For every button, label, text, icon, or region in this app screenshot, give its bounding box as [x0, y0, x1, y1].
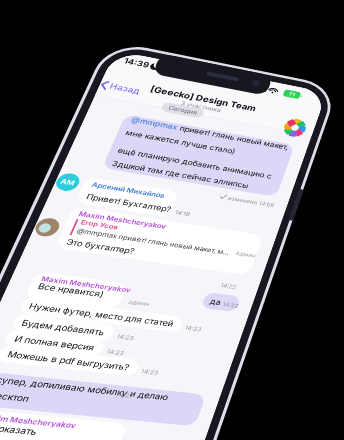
button[interactable]: Telegram group chat on iPhone mockup	[0, 0, 344, 440]
